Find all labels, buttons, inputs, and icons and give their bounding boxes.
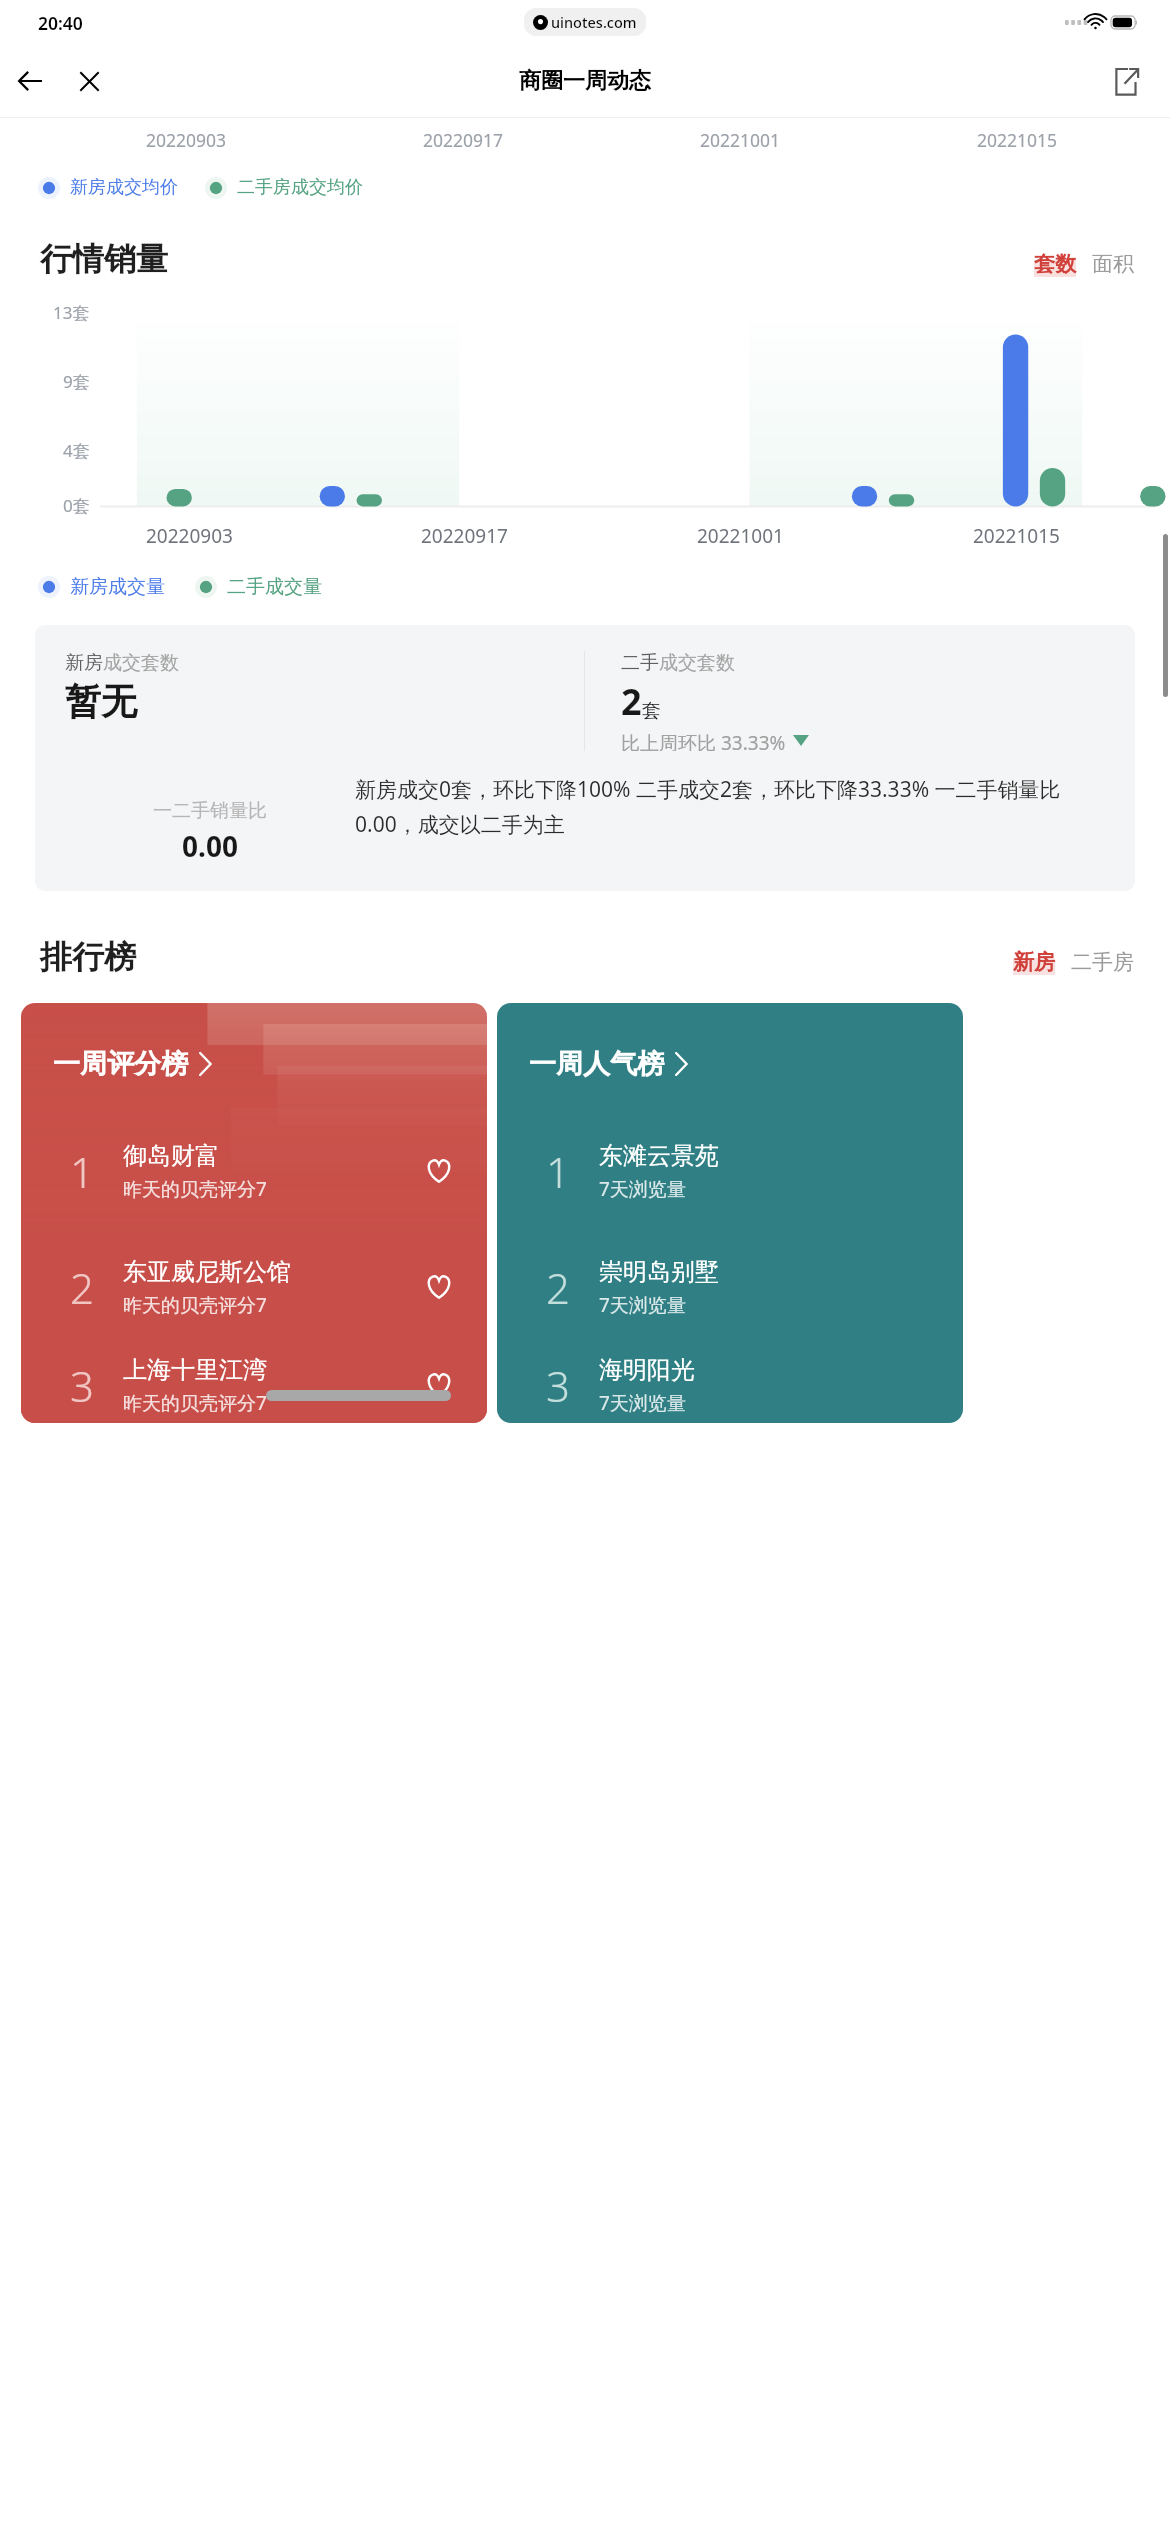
staticText: 3 — [70, 1357, 94, 1414]
staticText: 20221001 — [697, 523, 784, 549]
staticText: 商圈一周动态 — [519, 67, 651, 95]
staticText: 御岛财富 — [123, 1141, 219, 1171]
staticText: 3 — [546, 1357, 570, 1414]
staticText: 1 — [546, 1143, 570, 1200]
staticText: 二手成交量 — [227, 575, 322, 599]
staticText: 新房 — [1013, 949, 1055, 975]
staticText: 一二手销量比 — [153, 799, 267, 823]
staticText: 2 — [70, 1259, 94, 1316]
staticText: 东亚威尼斯公馆 — [123, 1257, 291, 1287]
staticText: 20221001 — [700, 128, 781, 152]
staticText: 暂无 — [65, 679, 137, 724]
staticText: 一周人气榜 — [529, 1047, 664, 1081]
staticText: 9套 — [63, 370, 90, 393]
staticText: 0.00 — [182, 827, 238, 865]
staticText: 昨天的贝壳评分7 — [123, 1390, 267, 1416]
staticText: 崇明岛别墅 — [599, 1257, 719, 1287]
button[interactable]: 一周人气榜 — [497, 1003, 963, 1423]
staticText: 1 — [70, 1143, 94, 1200]
staticText: 二手 — [621, 651, 659, 675]
button[interactable]: 新房 — [35, 625, 1135, 891]
staticText: 20220917 — [421, 523, 508, 549]
staticText: 0套 — [63, 494, 90, 517]
button[interactable]: Share — [1096, 53, 1152, 109]
staticText: 新房 — [65, 651, 103, 675]
staticText: 4套 — [63, 439, 90, 462]
button[interactable]: 面积 — [1092, 251, 1134, 279]
button[interactable]: Back — [0, 51, 60, 111]
staticText: 新房成交量 — [70, 575, 165, 599]
button[interactable]: Favorite — [417, 1265, 461, 1309]
staticText: 7天浏览量 — [599, 1176, 686, 1202]
staticText: 海明阳光 — [599, 1355, 695, 1385]
staticText: 一周评分榜 — [53, 1047, 188, 1081]
button[interactable]: Close — [60, 52, 118, 110]
staticText: 13套 — [53, 301, 90, 324]
staticText: 成交套数 — [103, 651, 179, 675]
staticText: 新房成交均价 — [70, 176, 178, 199]
staticText: 20220903 — [146, 523, 233, 549]
button[interactable]: 套数 — [1034, 251, 1076, 279]
staticText: 2 — [546, 1259, 570, 1316]
staticText: 20220917 — [423, 128, 504, 152]
staticText: 7天浏览量 — [599, 1390, 686, 1416]
staticText: 20221015 — [977, 128, 1058, 152]
staticText: 二手房成交均价 — [237, 176, 363, 199]
button[interactable]: 排行榜 — [40, 937, 136, 977]
button[interactable]: 一周评分榜 — [21, 1003, 487, 1423]
staticText: 新房成交0套，环比下降100% 二手成交2套，环比下降33.33% 一二手销量比… — [355, 775, 1111, 838]
staticText: 上海十里江湾 — [123, 1355, 267, 1385]
button[interactable]: 新房 — [1013, 949, 1055, 977]
button[interactable]: 行情销量 — [40, 239, 168, 279]
staticText: uinotes.com — [551, 12, 637, 32]
staticText: 昨天的贝壳评分7 — [123, 1292, 267, 1318]
staticText: 7天浏览量 — [599, 1292, 686, 1318]
button[interactable]: 二手房 — [1071, 949, 1134, 977]
staticText: 20220903 — [146, 128, 227, 152]
button[interactable]: Favorite — [417, 1363, 461, 1407]
staticText: 成交套数 — [659, 651, 735, 675]
button[interactable]: Favorite — [417, 1149, 461, 1193]
staticText: 2 — [621, 677, 642, 726]
staticText: 昨天的贝壳评分7 — [123, 1176, 267, 1202]
staticText: 东滩云景苑 — [599, 1141, 719, 1171]
staticText: 套 — [642, 699, 661, 723]
staticText: 套数 — [1034, 251, 1076, 277]
staticText: 20221015 — [973, 523, 1060, 549]
staticText: 比上周环比 33.33% — [621, 730, 786, 751]
staticText: 20:40 — [38, 11, 83, 35]
